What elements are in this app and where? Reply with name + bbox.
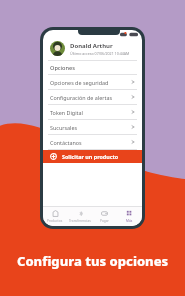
staticText: Configura tus opciones [17,252,169,270]
staticText: Opciones de seguridad [50,79,131,86]
button[interactable]: Solicitar un producto [43,150,142,163]
staticText: Último acceso 07/06/2021 10:44AM [70,51,130,56]
button[interactable]: Sucursales [43,120,142,134]
button[interactable]: Transferencias [67,207,92,226]
staticText: Productos [47,219,63,223]
staticText: Sucursales [50,124,131,131]
staticText: Configuración de alertas [50,94,131,101]
button[interactable]: Productos [43,207,67,226]
staticText: Más [126,219,133,223]
button[interactable]: Donald Arthur Norman [43,37,142,60]
staticText: Donald Arthur Norman [70,42,136,50]
button[interactable]: Token Digital [43,105,142,119]
button[interactable]: Contáctanos [43,135,142,149]
staticText: Solicitar un producto [62,153,119,160]
staticText: Token Digital [50,109,131,116]
staticText: Contáctanos [50,139,131,146]
button[interactable]: Configuración de alertas [43,90,142,104]
button[interactable]: Opciones de seguridad [43,75,142,89]
staticText: Pagar [100,219,109,223]
staticText: Opciones [50,64,75,72]
staticText: Transferencias [69,219,91,223]
button[interactable]: Pagar [92,207,117,226]
button[interactable]: Más [117,207,142,226]
